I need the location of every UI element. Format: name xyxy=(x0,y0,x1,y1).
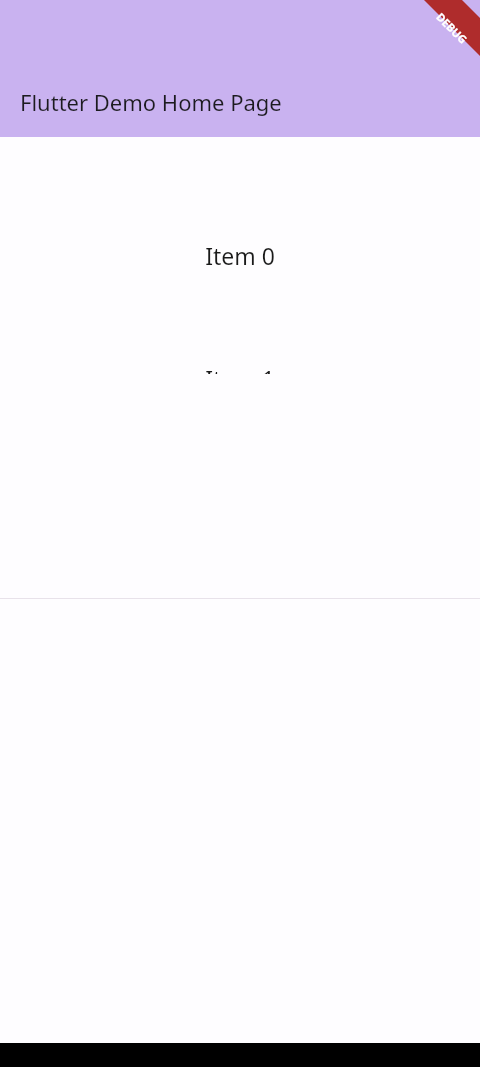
other: Debug banner xyxy=(0,0,480,80)
button[interactable]: Item 1 xyxy=(0,363,480,374)
staticText: Flutter Demo Home Page xyxy=(20,87,282,117)
staticText: Item 0 xyxy=(205,240,275,271)
button[interactable]: Item 0 xyxy=(0,137,480,374)
staticText: Item 1 xyxy=(205,363,275,374)
